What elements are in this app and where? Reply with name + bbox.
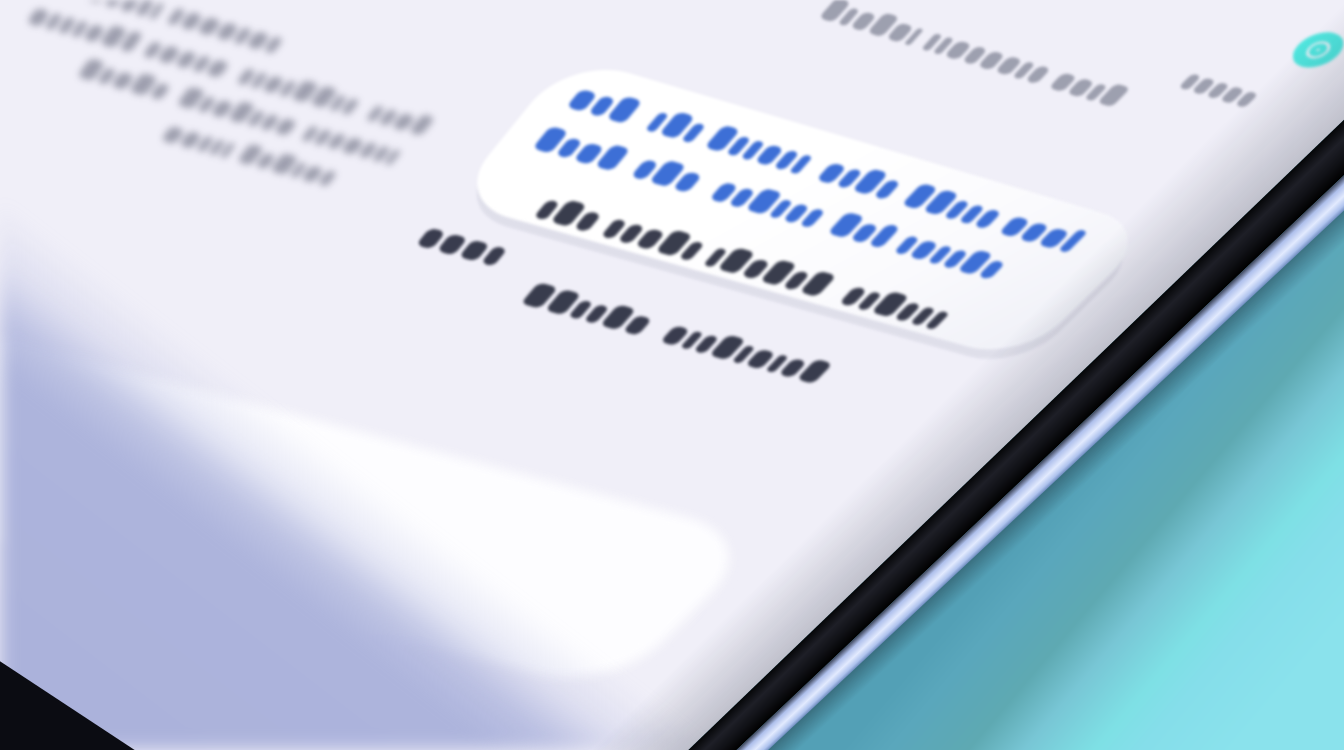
button[interactable]: Conversation: [0, 0, 1344, 750]
